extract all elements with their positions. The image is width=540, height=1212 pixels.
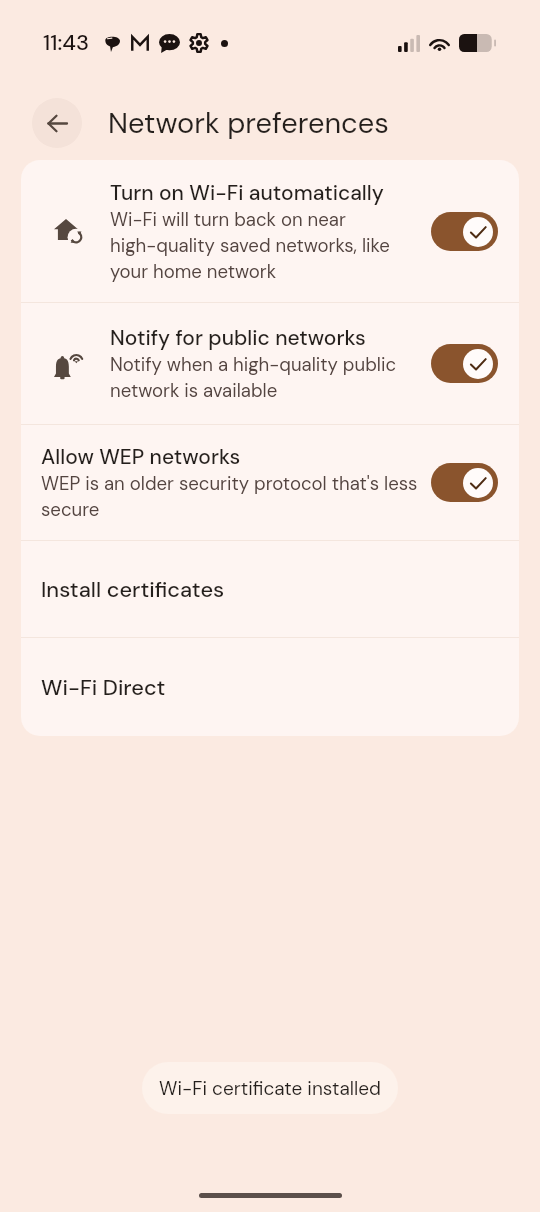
staticText: Wi-Fi certificate installed: [159, 1076, 381, 1101]
staticText: Network preferences: [108, 104, 389, 142]
staticText: 11:43: [43, 28, 89, 57]
button[interactable]: Allow WEP networks: [21, 425, 519, 540]
button[interactable]: Back: [32, 98, 82, 148]
staticText: Install certificates: [41, 575, 225, 603]
staticText: Allow WEP networks: [41, 443, 241, 470]
staticText: Notify when a high-quality public networ…: [110, 351, 397, 403]
button[interactable]: Turn on Wi-Fi automatically: [21, 160, 519, 302]
staticText: WEP is an older security protocol that's…: [41, 470, 418, 522]
staticText: Notify for public networks: [110, 324, 366, 351]
button[interactable]: Toggle on: [431, 463, 498, 502]
staticText: Wi-Fi will turn back on near high-qualit…: [110, 206, 390, 284]
button[interactable]: Toggle on: [431, 344, 498, 383]
button[interactable]: Toggle on: [431, 212, 498, 251]
button[interactable]: Wi-Fi certificate installed: [142, 1062, 398, 1114]
button[interactable]: Install certificates: [21, 541, 519, 637]
button[interactable]: Notify for public networks: [21, 303, 519, 424]
button[interactable]: Wi-Fi Direct: [21, 638, 519, 736]
staticText: Turn on Wi-Fi automatically: [110, 179, 384, 206]
staticText: Wi-Fi Direct: [41, 673, 166, 701]
